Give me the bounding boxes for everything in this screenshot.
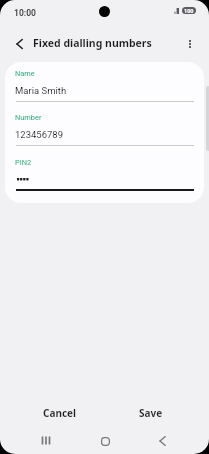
staticText: Cancel xyxy=(43,406,77,420)
button[interactable]: Navigate up xyxy=(5,30,33,58)
button[interactable]: More options xyxy=(176,30,203,57)
staticText: Save xyxy=(139,406,163,420)
button[interactable]: Home xyxy=(90,427,120,454)
staticText: Maria Smith xyxy=(15,85,67,96)
button[interactable]: Cancel xyxy=(24,401,95,425)
button[interactable]: Save xyxy=(115,401,186,425)
staticText: Fixed dialling numbers xyxy=(33,36,152,50)
staticText: PIN2 xyxy=(15,158,32,167)
staticText: Name xyxy=(15,69,35,78)
staticText: Number xyxy=(15,113,42,122)
staticText: 123456789 xyxy=(15,129,64,140)
staticText: 100 xyxy=(184,8,194,14)
button[interactable]: Back xyxy=(149,427,179,454)
staticText: 10:00 xyxy=(14,8,36,18)
button[interactable]: Recents xyxy=(31,426,61,454)
